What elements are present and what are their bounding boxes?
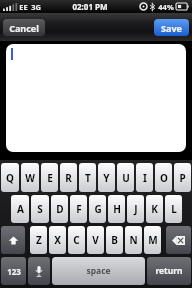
staticText: X xyxy=(54,233,61,247)
staticText: F xyxy=(76,202,82,216)
staticText: U xyxy=(122,171,130,185)
staticText: C xyxy=(73,233,80,247)
button[interactable]: K xyxy=(146,195,163,223)
staticText: P xyxy=(179,171,186,185)
button[interactable]: Q xyxy=(1,163,19,192)
staticText: R xyxy=(65,171,72,185)
button[interactable]: W xyxy=(21,163,39,192)
staticText: 44% xyxy=(158,2,174,12)
button[interactable]: A xyxy=(11,195,29,223)
staticText: Cancel xyxy=(9,22,39,34)
staticText: V xyxy=(92,233,99,247)
staticText: Y xyxy=(103,171,110,185)
button[interactable]: Shift xyxy=(1,226,25,254)
staticText: I xyxy=(143,171,147,185)
staticText: K xyxy=(151,202,158,216)
staticText: 123 xyxy=(7,266,21,277)
button[interactable]: I xyxy=(136,163,153,192)
staticText: Q xyxy=(6,171,14,185)
button[interactable] xyxy=(6,44,186,152)
button[interactable]: R xyxy=(60,163,77,192)
button[interactable]: Z xyxy=(30,226,47,254)
button[interactable]: Y xyxy=(98,163,115,192)
button[interactable]: O xyxy=(155,163,172,192)
staticText: O xyxy=(160,171,168,185)
button[interactable]: C xyxy=(68,226,85,254)
staticText: D xyxy=(56,202,64,216)
button[interactable]: J xyxy=(127,195,144,223)
button[interactable]: Delete xyxy=(166,226,191,254)
button[interactable]: E xyxy=(41,163,58,192)
button[interactable]: space xyxy=(52,257,145,285)
button[interactable]: Numbers xyxy=(1,257,26,285)
staticText: G xyxy=(94,202,102,216)
button[interactable]: Cancel xyxy=(3,19,45,36)
staticText: H xyxy=(113,202,121,216)
staticText: W xyxy=(25,171,35,185)
button[interactable]: Save xyxy=(154,19,189,36)
button[interactable]: X xyxy=(49,226,66,254)
button[interactable]: B xyxy=(106,226,123,254)
button[interactable]: F xyxy=(70,195,87,223)
button[interactable]: Dictate xyxy=(28,257,50,285)
staticText: EE xyxy=(19,2,28,12)
staticText: 3G xyxy=(31,2,41,12)
button[interactable]: D xyxy=(51,195,68,223)
button[interactable]: G xyxy=(89,195,106,223)
button[interactable]: L xyxy=(165,195,182,223)
button[interactable]: H xyxy=(108,195,125,223)
button[interactable]: U xyxy=(117,163,134,192)
button[interactable]: N xyxy=(125,226,142,254)
staticText: T xyxy=(85,171,91,185)
staticText: L xyxy=(171,202,177,216)
staticText: A xyxy=(17,202,24,216)
button[interactable]: P xyxy=(174,163,191,192)
staticText: E xyxy=(47,171,53,185)
staticText: Z xyxy=(36,233,42,247)
staticText: J xyxy=(134,202,138,216)
button[interactable]: T xyxy=(79,163,96,192)
staticText: M xyxy=(148,233,158,247)
staticText: space xyxy=(86,265,111,277)
staticText: N xyxy=(129,233,138,247)
button[interactable]: M xyxy=(144,226,161,254)
staticText: 02:01 PM xyxy=(72,1,108,12)
button[interactable]: S xyxy=(31,195,49,223)
staticText: B xyxy=(111,233,118,247)
staticText: return xyxy=(155,265,183,277)
staticText: Save xyxy=(161,22,182,34)
button[interactable]: Return xyxy=(147,257,191,285)
button[interactable]: V xyxy=(87,226,104,254)
staticText: S xyxy=(37,202,43,216)
